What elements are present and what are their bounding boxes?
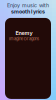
staticText: Enjoy music with	[7, 2, 49, 8]
staticText: smooth lyrics	[11, 8, 45, 15]
staticText: Enemy	[15, 30, 32, 36]
staticText: Imagine Dragons	[9, 36, 39, 41]
